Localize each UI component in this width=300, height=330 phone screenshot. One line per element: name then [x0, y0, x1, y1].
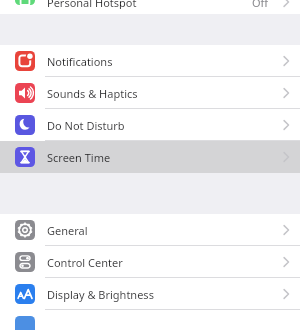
button[interactable]: Display and Brightness: [0, 278, 300, 310]
staticText: Display & Brightness: [47, 287, 154, 302]
staticText: Sounds & Haptics: [47, 86, 138, 101]
staticText: General: [47, 223, 88, 238]
button[interactable]: Do Not Disturb: [0, 109, 300, 141]
other: Do Not Disturb: [15, 115, 35, 135]
other: Control Center: [15, 252, 35, 272]
other: Wallpaper: [15, 316, 35, 330]
staticText: Control Center: [47, 255, 123, 270]
staticText: Off: [252, 0, 269, 9]
staticText: Do Not Disturb: [47, 118, 125, 133]
staticText: Screen Time: [47, 150, 111, 165]
button[interactable]: Sounds and Haptics: [0, 77, 300, 109]
staticText: Notifications: [47, 54, 113, 69]
other: Sounds and Haptics: [15, 83, 35, 103]
button[interactable]: Wallpaper: [0, 310, 300, 330]
other: Screen Time: [15, 147, 35, 167]
other: Notifications: [15, 51, 35, 71]
button[interactable]: Notifications: [0, 45, 300, 77]
button[interactable]: Personal Hotspot: [0, 0, 300, 14]
button[interactable]: General: [0, 214, 300, 246]
other: Display and Brightness: [15, 284, 35, 304]
other: General: [15, 220, 35, 240]
staticText: Personal Hotspot: [47, 0, 137, 9]
button[interactable]: Control Center: [0, 246, 300, 278]
button[interactable]: Screen Time: [0, 141, 300, 173]
